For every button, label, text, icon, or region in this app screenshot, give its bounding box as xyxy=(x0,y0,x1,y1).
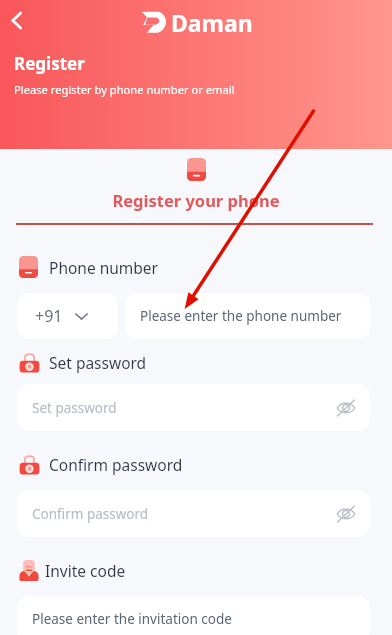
button[interactable]: Set password xyxy=(19,352,147,373)
button[interactable]: Set password xyxy=(17,384,370,431)
button[interactable]: Please enter the invitation code xyxy=(17,596,370,635)
button[interactable]: Show password xyxy=(332,500,360,528)
button[interactable]: Confirm password xyxy=(19,454,183,475)
button[interactable]: Confirm password xyxy=(17,490,370,537)
staticText: Please enter the invitation code xyxy=(32,610,232,628)
staticText: Invite code xyxy=(45,560,126,581)
button[interactable]: +91 xyxy=(17,293,118,339)
staticText: +91 xyxy=(35,305,63,327)
staticText: Confirm password xyxy=(32,505,149,523)
button[interactable]: Show password xyxy=(332,394,360,422)
button[interactable]: Invite code xyxy=(19,560,126,581)
staticText: Daman xyxy=(171,7,253,38)
staticText: Please register by phone number or email xyxy=(14,82,235,97)
staticText: Phone number xyxy=(49,257,159,278)
staticText: Register your phone xyxy=(0,189,392,211)
button[interactable]: Please enter the phone number xyxy=(125,293,370,339)
button[interactable]: Back xyxy=(0,0,35,40)
staticText: Confirm password xyxy=(49,454,183,475)
staticText: Register xyxy=(14,52,85,75)
staticText: Please enter the phone number xyxy=(140,307,342,325)
staticText: Set password xyxy=(32,399,117,417)
button[interactable]: Phone number xyxy=(19,256,159,278)
staticText: Set password xyxy=(49,352,147,373)
